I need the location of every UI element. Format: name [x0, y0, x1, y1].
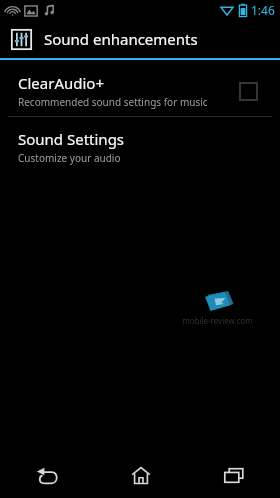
button[interactable]: ClearAudio+ [0, 66, 280, 116]
staticText: Customize your audio [18, 151, 121, 165]
button[interactable]: Recent apps [187, 452, 280, 498]
staticText: ClearAudio+ [18, 73, 105, 93]
staticText: Sound Settings [18, 129, 125, 149]
staticText: mobile-review.com [182, 315, 253, 326]
staticText: 1:46 [251, 2, 275, 18]
button[interactable]: Sound Settings [0, 127, 280, 175]
button[interactable]: Home [94, 452, 187, 498]
staticText: Sound enhancements [44, 29, 198, 49]
staticText: Recommended sound settings for music [18, 95, 208, 109]
button[interactable]: ClearAudio+ checkbox [232, 75, 264, 107]
button[interactable]: Back [0, 452, 94, 498]
